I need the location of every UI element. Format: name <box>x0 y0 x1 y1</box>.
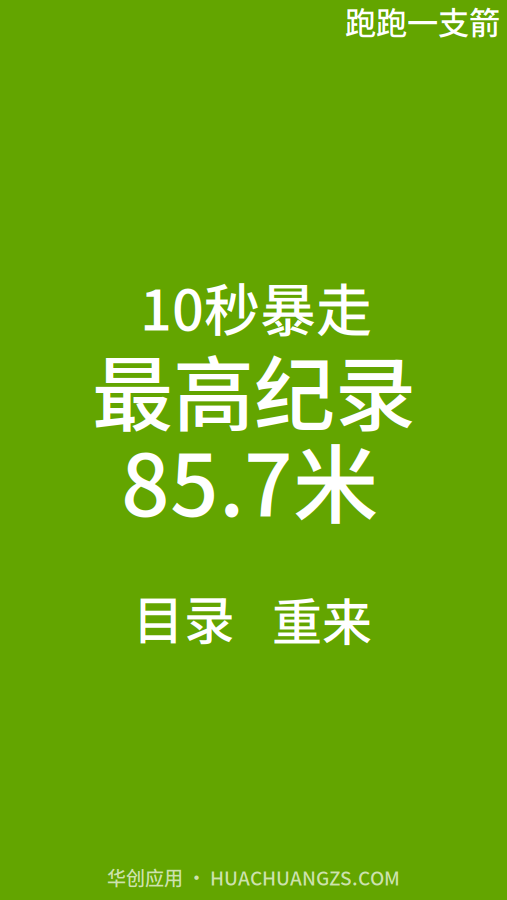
button[interactable]: 目录 <box>133 580 235 654</box>
staticText: 华创应用 • HUACHUANGZS.COM <box>107 863 400 891</box>
staticText: 重来 <box>272 582 372 655</box>
staticText: 85.7米 <box>121 417 378 541</box>
staticText: 10秒暴走 <box>140 265 372 347</box>
staticText: 跑跑一支箭 <box>345 0 500 43</box>
staticText: 最高纪录 <box>92 330 416 447</box>
staticText: 目录 <box>133 580 235 654</box>
button[interactable]: 重来 <box>272 582 372 655</box>
